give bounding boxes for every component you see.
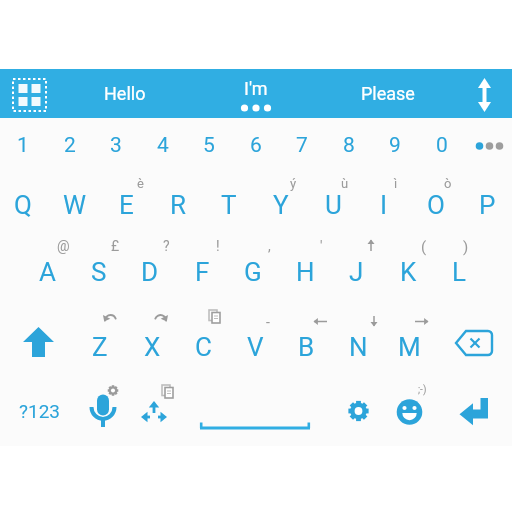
staticText: ? [163,238,170,254]
button[interactable]: A [12,250,82,294]
button[interactable]: I'm [216,66,296,110]
staticText: O [427,190,445,220]
button[interactable]: 7 [267,123,337,167]
staticText: ý [290,176,297,191]
button[interactable]: 8 [314,123,384,167]
button[interactable]: K [373,250,443,294]
button[interactable]: 6 [221,123,291,167]
button[interactable]: Y [246,183,316,227]
staticText: ì [394,176,398,191]
staticText: X [144,332,161,362]
button[interactable] [84,388,124,436]
button[interactable]: 1 [0,123,58,167]
button[interactable]: Z [65,325,135,369]
staticText: Hello [104,83,146,104]
button[interactable]: F [167,250,237,294]
button[interactable] [389,388,433,436]
staticText: W [63,190,87,220]
staticText: Q [14,190,32,220]
staticText: I'm [244,78,268,99]
staticText: 9 [389,133,401,158]
staticText: 1 [17,133,29,158]
staticText: ò [444,176,452,191]
button[interactable]: I [349,183,419,227]
button[interactable]: H [270,250,340,294]
staticText: ?123 [19,400,61,422]
button[interactable]: L [424,250,494,294]
staticText: ù [341,176,349,191]
staticText: V [247,332,264,362]
button[interactable]: S [64,250,134,294]
button[interactable]: W [40,183,110,227]
staticText: I [380,190,388,220]
button[interactable]: C [168,325,238,369]
button[interactable]: O [401,183,471,227]
staticText: A [39,257,56,287]
button[interactable]: V [220,325,290,369]
button[interactable]: E [91,183,161,227]
staticText: S [91,257,107,287]
button[interactable]: D [115,250,185,294]
button[interactable]: 3 [81,123,151,167]
button[interactable] [448,388,496,436]
staticText: R [170,190,187,220]
button[interactable]: Hello [62,69,188,118]
staticText: ;-) [418,384,427,396]
staticText: N [349,332,368,362]
button[interactable]: B [271,325,341,369]
button[interactable]: R [143,183,213,227]
staticText: P [479,190,496,220]
staticText: - [266,314,270,330]
staticText: J [349,257,364,287]
staticText: T [221,190,237,220]
button[interactable]: 2 [35,123,105,167]
button[interactable]: ?123 [5,389,75,433]
staticText: H [296,257,315,287]
staticText: 7 [296,133,308,158]
button[interactable]: T [194,183,264,227]
staticText: 4 [157,133,169,158]
staticText: K [400,257,417,287]
button[interactable]: Please [325,69,451,118]
staticText: U [325,190,342,220]
button[interactable]: M [374,325,444,369]
staticText: G [244,257,262,287]
button[interactable] [8,74,50,116]
staticText: è [137,176,144,191]
staticText: L [452,257,467,287]
button[interactable]: Q [0,183,58,227]
staticText: ( [421,238,427,256]
button[interactable]: G [218,250,288,294]
button[interactable]: 0 [407,123,477,167]
staticText: Y [273,190,289,220]
staticText: ! [216,238,220,254]
staticText: D [141,257,159,287]
button[interactable]: 9 [360,123,430,167]
staticText: B [298,332,315,362]
staticText: 8 [343,133,355,158]
staticText: C [195,332,212,362]
staticText: M [398,332,421,362]
button[interactable] [190,395,320,439]
staticText: 6 [250,133,262,158]
button[interactable]: P [452,183,512,227]
staticText: @ [57,238,70,254]
button[interactable]: 5 [174,123,244,167]
staticText: ' [320,238,323,254]
button[interactable]: 4 [128,123,198,167]
button[interactable] [336,388,380,436]
button[interactable] [448,320,500,366]
button[interactable] [132,388,176,436]
staticText: £ [111,238,120,254]
button[interactable] [466,72,506,116]
staticText: 0 [436,133,448,158]
staticText: F [195,257,210,287]
button[interactable]: U [298,183,368,227]
button[interactable]: X [117,325,187,369]
staticText: Z [92,332,108,362]
button[interactable]: J [321,250,391,294]
staticText: Please [361,83,415,104]
staticText: E [119,190,134,220]
button[interactable] [14,320,64,366]
button[interactable]: N [323,325,393,369]
